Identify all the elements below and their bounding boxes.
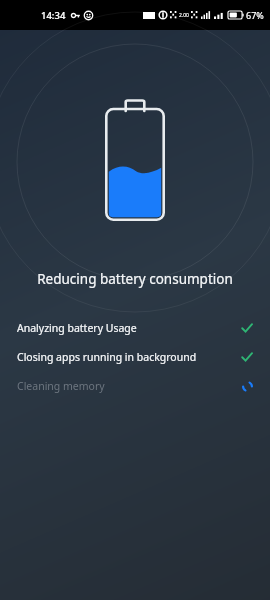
- staticText: Closing apps running in background: [17, 350, 240, 364]
- other: Completed: [240, 350, 254, 364]
- staticText: Cleaning memory: [17, 379, 240, 393]
- other: Completed: [240, 321, 254, 335]
- staticText: 67%: [246, 9, 264, 21]
- other: In progress: [240, 379, 254, 393]
- staticText: 2.00: [179, 12, 189, 19]
- staticText: Reducing battery consumption: [0, 270, 270, 288]
- button[interactable]: Analyzing battery Usage: [0, 313, 270, 342]
- button[interactable]: Cleaning memory: [0, 371, 270, 400]
- staticText: Analyzing battery Usage: [17, 321, 240, 335]
- staticText: 14:34: [41, 9, 66, 22]
- button[interactable]: Closing apps running in background: [0, 342, 270, 371]
